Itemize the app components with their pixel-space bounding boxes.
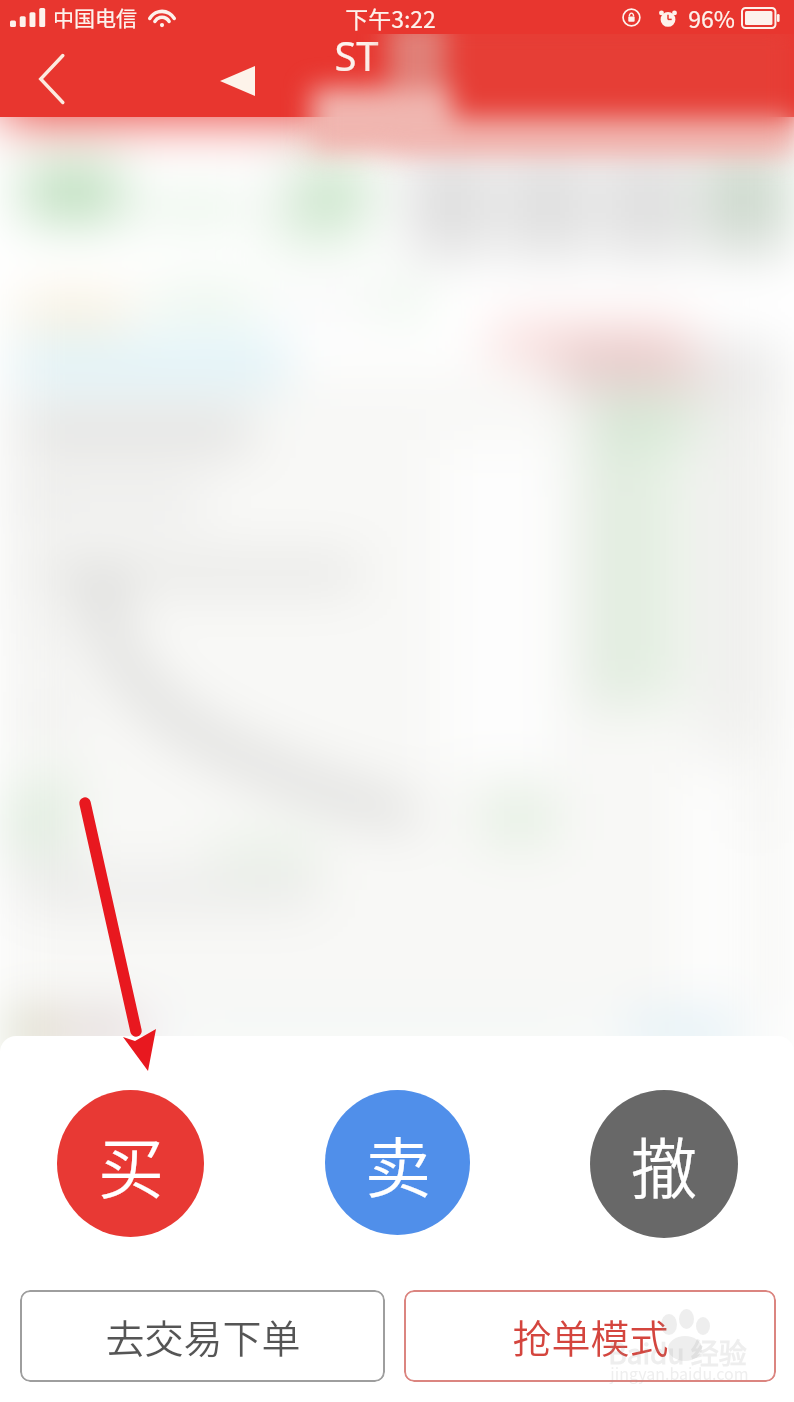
button[interactable]: 卖 bbox=[325, 1090, 470, 1235]
button[interactable]: 抢单模式 bbox=[404, 1290, 776, 1382]
staticText: 去交易下单 bbox=[105, 1308, 301, 1364]
staticText: 96% bbox=[688, 1, 735, 34]
staticText: ST bbox=[334, 28, 379, 82]
button[interactable]: Back bbox=[22, 50, 80, 108]
staticText: 卖 bbox=[365, 1115, 431, 1211]
button[interactable]: 去交易下单 bbox=[20, 1290, 385, 1382]
staticText: jingyan.baidu.com bbox=[610, 1361, 749, 1384]
staticText: 撤 bbox=[631, 1116, 697, 1212]
staticText: 买 bbox=[98, 1116, 164, 1212]
button[interactable]: 买 bbox=[57, 1090, 204, 1237]
staticText: Baidu 经验 bbox=[608, 1332, 747, 1373]
staticText: 中国电信 bbox=[53, 2, 137, 32]
staticText: 抢单模式 bbox=[512, 1308, 669, 1364]
button[interactable]: 撤 bbox=[590, 1090, 738, 1238]
staticText: 下午3:22 bbox=[345, 1, 436, 34]
button[interactable]: Previous stock bbox=[208, 52, 266, 110]
